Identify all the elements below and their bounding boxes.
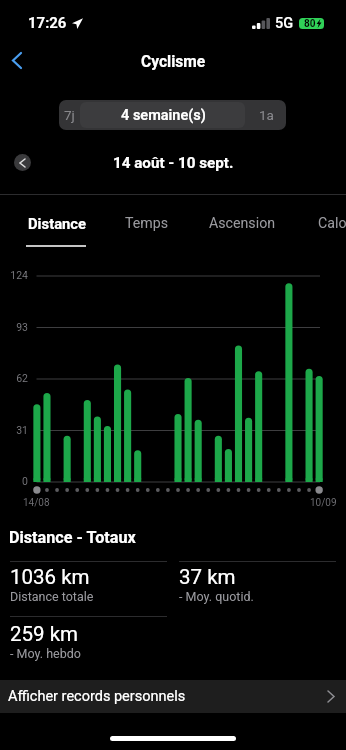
- staticText: 259 km: [10, 622, 79, 646]
- button[interactable]: Ascension: [208, 198, 276, 249]
- staticText: 17:26: [28, 14, 67, 32]
- staticText: Temps: [125, 215, 169, 232]
- button[interactable]: Calories: [315, 198, 346, 249]
- staticText: 1a: [259, 107, 274, 123]
- button[interactable]: Back: [0, 44, 34, 76]
- staticText: Calories: [318, 215, 346, 232]
- staticText: 4 semaine(s): [121, 107, 206, 124]
- button[interactable]: 4 semaine(s): [80, 100, 246, 130]
- staticText: 5G: [275, 15, 294, 32]
- staticText: Distance: [28, 215, 87, 232]
- staticText: 80: [304, 18, 316, 29]
- staticText: - Moy. hebdo: [10, 646, 81, 661]
- staticText: 37 km: [179, 565, 236, 589]
- button[interactable]: Distance: [26, 198, 88, 249]
- staticText: 7j: [64, 107, 75, 123]
- staticText: 93: [0, 321, 28, 333]
- staticText: 0: [0, 475, 28, 487]
- staticText: Distance - Totaux: [9, 528, 136, 547]
- staticText: 1036 km: [10, 565, 90, 589]
- staticText: 124: [0, 269, 28, 281]
- button[interactable]: Previous period: [14, 154, 31, 171]
- staticText: - Moy. quotid.: [179, 589, 254, 604]
- staticText: 14 août - 10 sept.: [113, 154, 234, 172]
- staticText: Afficher records personnels: [8, 688, 186, 705]
- staticText: Cyclisme: [141, 53, 206, 71]
- staticText: Ascension: [209, 215, 276, 232]
- staticText: 31: [0, 424, 28, 436]
- button[interactable]: 1a: [246, 100, 286, 130]
- button[interactable]: 7j: [59, 100, 80, 130]
- button[interactable]: Temps: [123, 198, 171, 249]
- staticText: 62: [0, 372, 28, 384]
- button[interactable]: Afficher records personnels: [0, 680, 346, 713]
- staticText: Distance totale: [10, 589, 94, 604]
- staticText: 14/08: [23, 497, 50, 509]
- staticText: 10/09: [310, 497, 337, 509]
